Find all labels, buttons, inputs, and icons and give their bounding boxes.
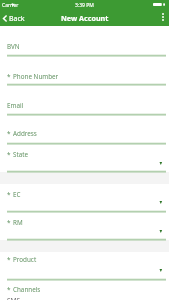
staticText: New Account — [61, 13, 109, 23]
staticText: Product — [13, 255, 37, 264]
staticText: EC — [13, 190, 21, 199]
button[interactable]: More options — [158, 11, 169, 26]
staticText: RM — [13, 218, 23, 227]
button[interactable] — [0, 184, 169, 211]
staticText: Address — [13, 129, 37, 138]
other: Open dropdown — [159, 162, 164, 166]
staticText: State — [13, 150, 29, 159]
staticText: * — [7, 190, 13, 199]
button[interactable]: Back — [0, 11, 30, 26]
staticText: Phone Number — [13, 72, 59, 81]
button[interactable]: SMS — [7, 296, 21, 300]
staticText: 3:39 PM — [75, 2, 94, 9]
staticText: Channels — [13, 285, 41, 294]
button[interactable] — [0, 26, 169, 55]
staticText: * — [7, 218, 13, 227]
button[interactable] — [0, 211, 169, 239]
staticText: Carrier — [2, 2, 19, 9]
staticText: BVN — [7, 42, 20, 51]
staticText: Back — [9, 14, 25, 23]
button[interactable] — [0, 252, 169, 280]
button[interactable] — [0, 143, 169, 172]
button[interactable] — [0, 84, 169, 114]
staticText: * — [7, 72, 13, 81]
staticText: * — [7, 285, 13, 294]
staticText: Email — [7, 101, 24, 110]
staticText: * — [7, 150, 13, 159]
button[interactable] — [0, 55, 169, 84]
other: Open dropdown — [159, 269, 164, 273]
other: Open dropdown — [159, 230, 164, 234]
staticText: * — [7, 129, 13, 138]
staticText: * — [7, 255, 13, 264]
other: Open dropdown — [159, 201, 164, 205]
button[interactable] — [0, 114, 169, 143]
